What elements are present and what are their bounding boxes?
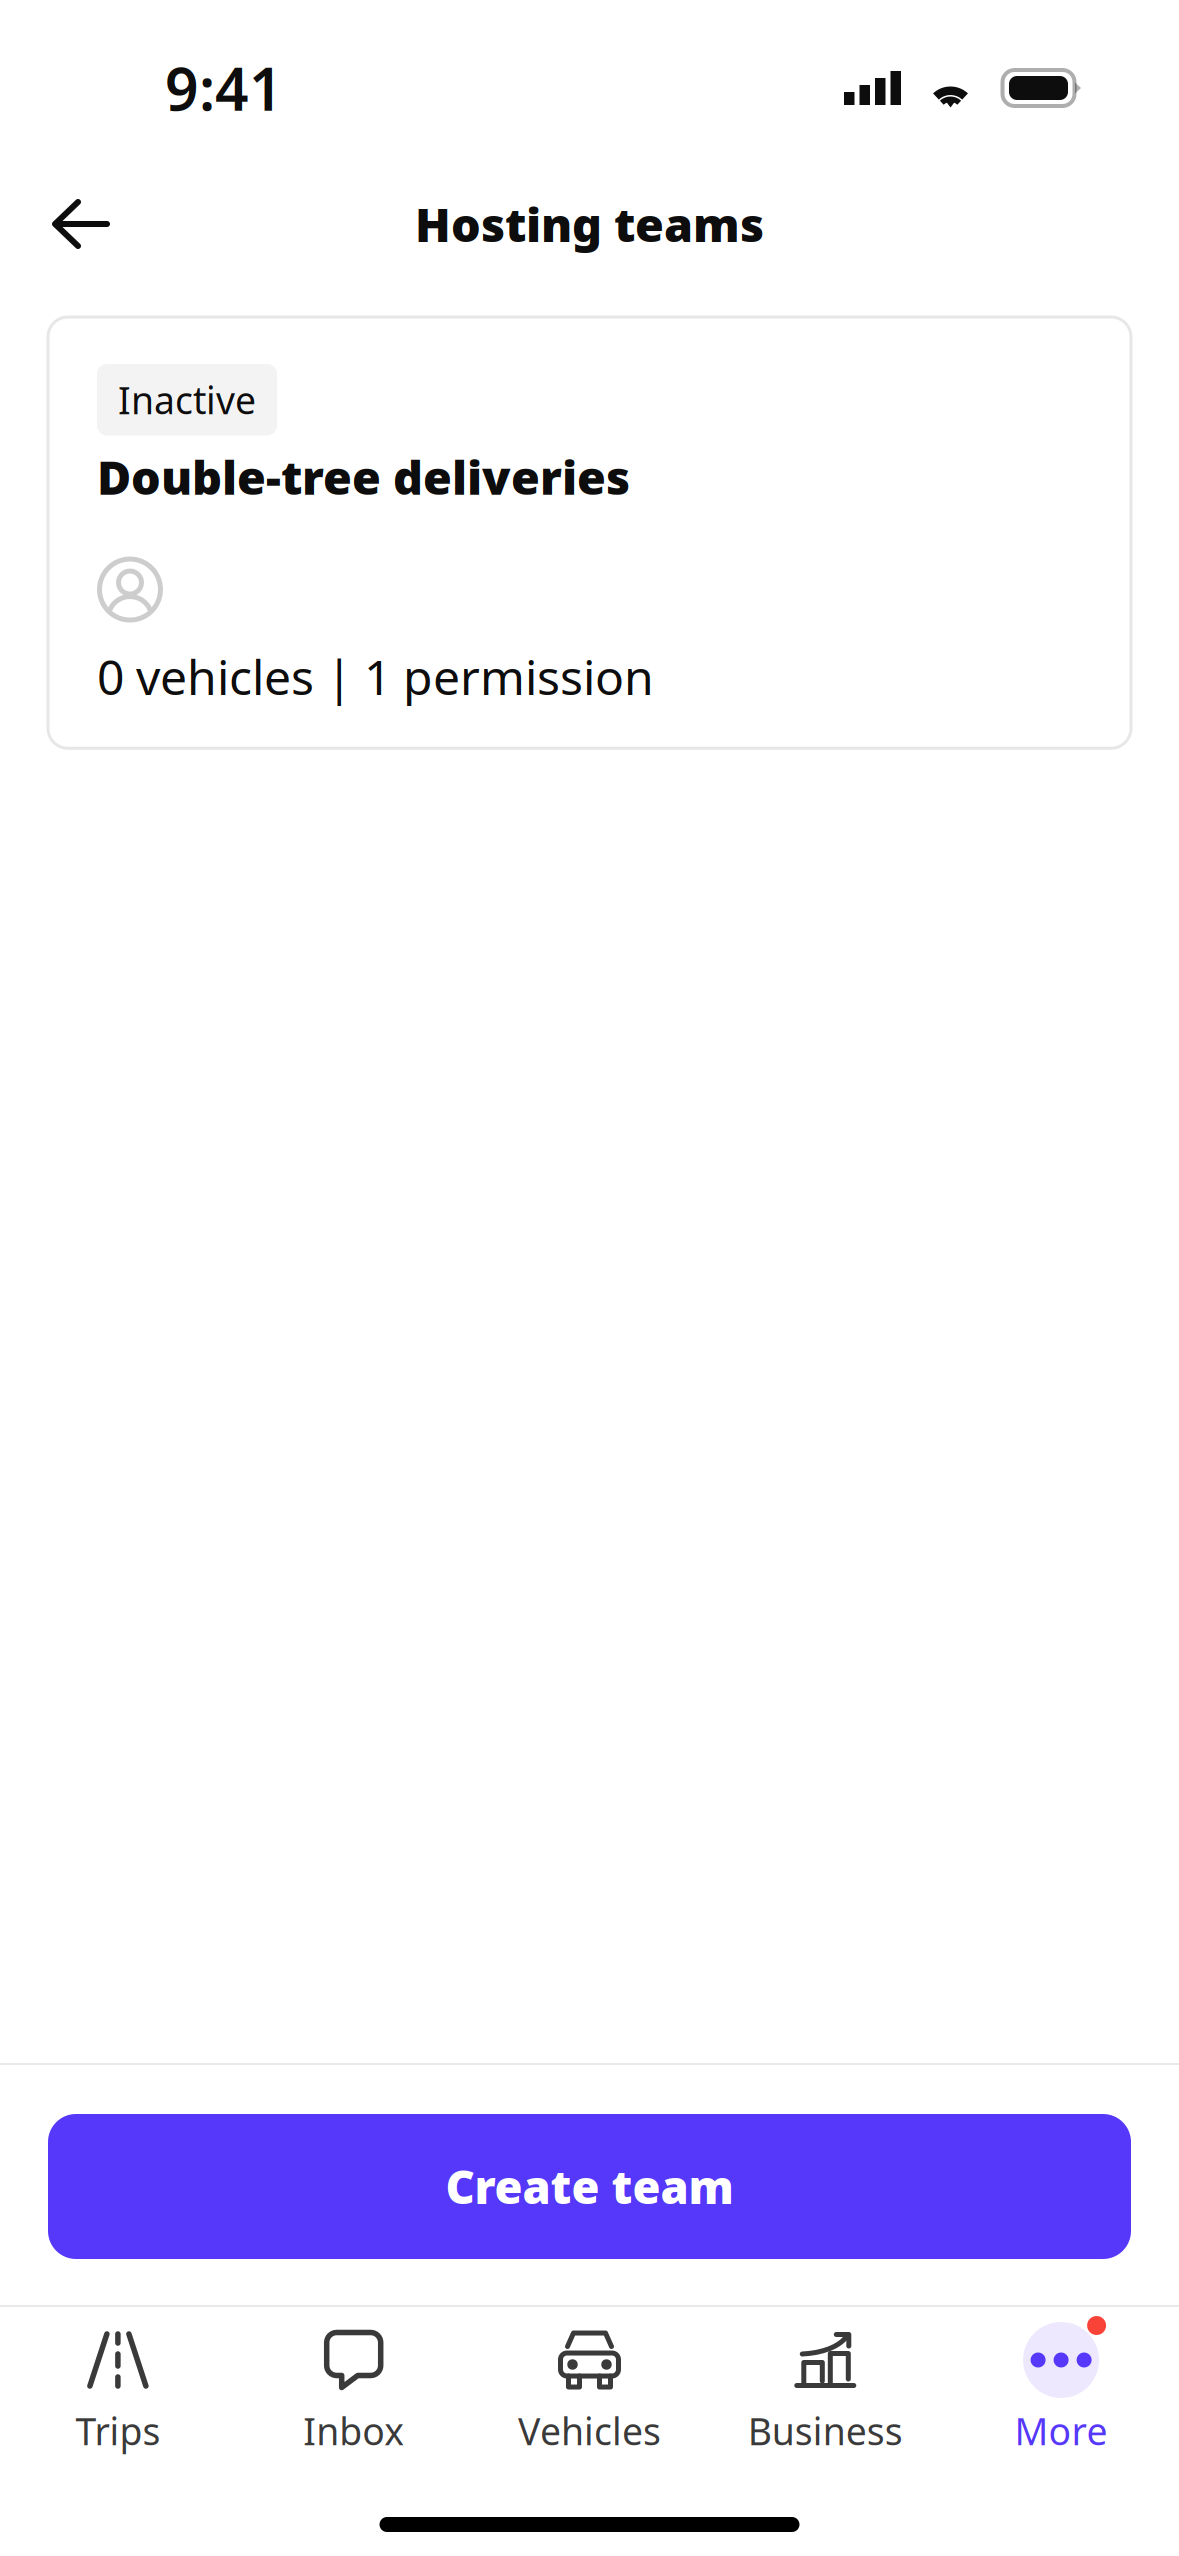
button[interactable]: Vehicles (472, 2307, 707, 2471)
staticText: Create team (445, 2156, 733, 2217)
button[interactable]: Inactive (48, 317, 1131, 748)
button[interactable]: Business (707, 2307, 943, 2471)
button[interactable]: Trips (0, 2307, 236, 2471)
staticText: Inactive (118, 375, 256, 425)
button[interactable]: Inbox (236, 2307, 472, 2471)
staticText: Trips (75, 2406, 160, 2456)
staticText: 0 vehicles | 1 permission (97, 644, 654, 708)
staticText: Inbox (303, 2406, 404, 2456)
button[interactable]: Back (52, 176, 148, 272)
staticText: 9:41 (165, 49, 283, 127)
staticText: Business (748, 2406, 903, 2456)
staticText: Double-tree deliveries (97, 446, 630, 508)
staticText: Vehicles (518, 2406, 661, 2456)
staticText: More (1015, 2406, 1108, 2456)
button[interactable]: Create team (0, 2065, 1179, 2305)
staticText: Hosting teams (415, 193, 764, 255)
button[interactable]: More (943, 2307, 1179, 2471)
